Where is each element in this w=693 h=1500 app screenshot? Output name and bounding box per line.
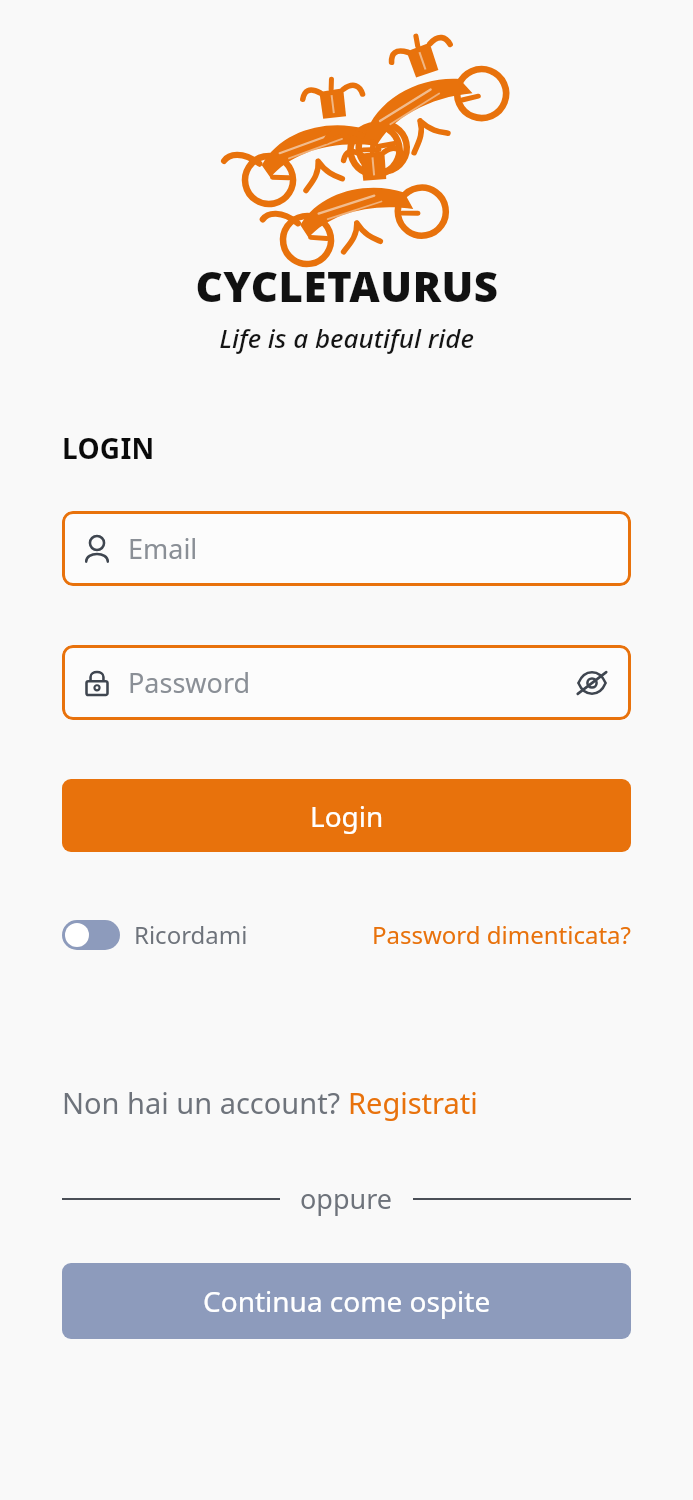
staticText: Registrati [348,1083,478,1122]
staticText: oppure [300,1180,393,1217]
button[interactable]: Continua come ospite [62,1263,631,1339]
staticText: Email [128,530,198,567]
button[interactable]: Show password [571,662,613,704]
staticText: Non hai un account? [62,1083,348,1122]
staticText: CYCLETAURUS [195,257,499,314]
staticText: Continua come ospite [203,1282,491,1320]
button[interactable]: Ricordami [62,914,248,955]
staticText: Life is a beautiful ride [219,320,474,355]
button[interactable]: Password [62,645,631,720]
button[interactable]: Email [62,511,631,586]
staticText: Password dimenticata? [372,918,631,951]
staticText: Ricordami [134,918,248,951]
staticText: LOGIN [62,429,155,467]
staticText: Login [310,797,384,835]
button[interactable]: Registrati [348,1083,478,1122]
staticText: Password [128,664,571,701]
button[interactable]: Login [62,779,631,852]
button[interactable]: Password dimenticata? [372,914,631,955]
